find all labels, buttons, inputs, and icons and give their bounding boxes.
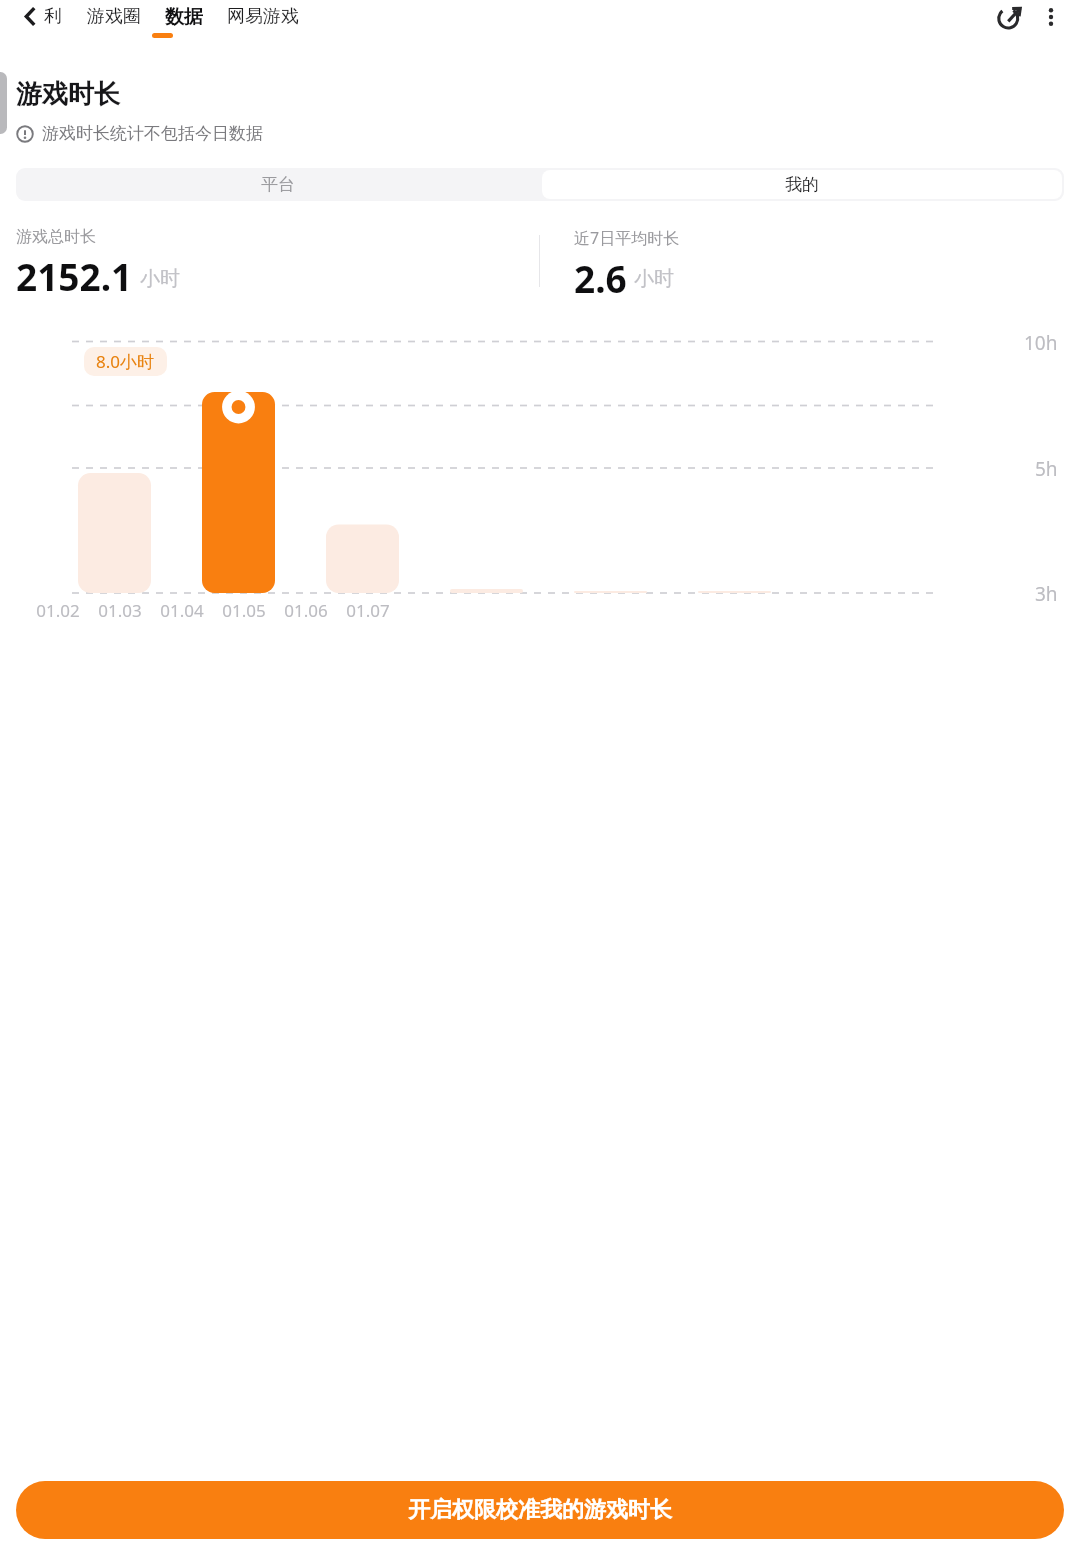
button[interactable]: 数据 [159,0,209,33]
staticText: 2152.1 [16,251,133,295]
button[interactable]: More options [1030,0,1072,33]
staticText: 游戏时长 [16,78,120,111]
staticText: 3h [1035,581,1058,607]
staticText: 小时 [634,266,674,291]
staticText: 2.6 [574,253,627,295]
staticText: 开启权限校准我的游戏时长 [408,1496,672,1524]
staticText: 近7日平均时长 [574,227,680,249]
staticText: 游戏总时长 [16,227,96,247]
staticText: 游戏时长统计不包括今日数据 [42,123,263,144]
button[interactable]: Back [20,1,65,32]
button[interactable]: 开启权限校准我的游戏时长 [16,1481,1064,1539]
staticText: 01.04 [160,599,204,622]
button[interactable]: 我的 [542,170,1062,199]
staticText: 5h [1035,456,1058,482]
staticText: 小时 [140,266,180,291]
staticText: 01.03 [98,599,142,622]
staticText: 我的 [785,174,819,195]
staticText: 01.02 [36,599,80,622]
staticText: 10h [1024,330,1058,356]
button[interactable]: 平台 [16,168,540,201]
staticText: 01.07 [346,599,390,622]
staticText: 利 [44,5,62,28]
staticText: 平台 [261,174,295,195]
button[interactable]: Share [988,0,1030,33]
button[interactable]: 游戏圈 [81,0,147,33]
staticText: 01.06 [284,599,328,622]
staticText: 01.05 [222,599,266,622]
button[interactable]: 网易游戏 [221,0,305,33]
staticText: 8.0小时 [96,350,155,373]
